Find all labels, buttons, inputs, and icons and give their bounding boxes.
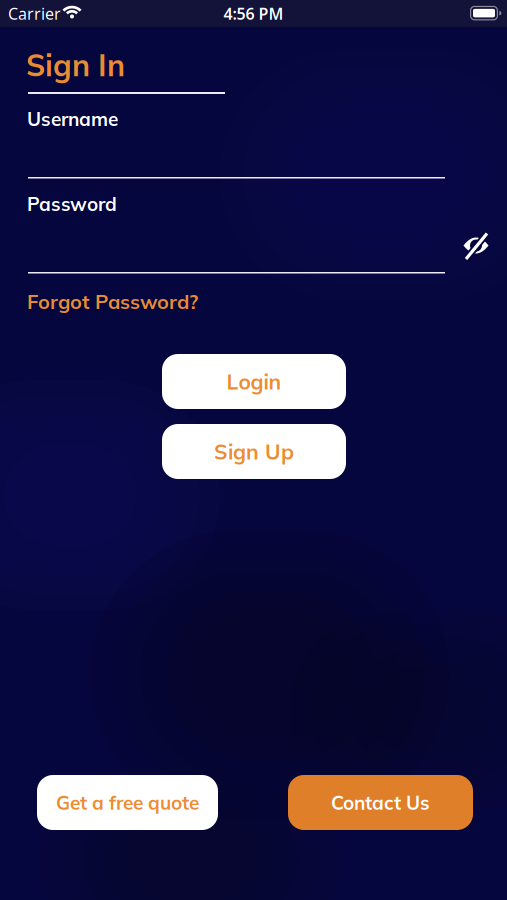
- button[interactable]: Get a free quote: [37, 775, 218, 830]
- staticText: 4:56 PM: [223, 3, 283, 24]
- staticText: Contact Us: [331, 791, 430, 814]
- button[interactable]: Forgot Password?: [27, 289, 198, 314]
- button[interactable]: Sign Up: [162, 424, 346, 479]
- button[interactable]: Contact Us: [288, 775, 473, 830]
- staticText: Username: [27, 107, 118, 131]
- staticText: Sign Up: [214, 438, 294, 465]
- button[interactable]: [463, 232, 489, 258]
- button[interactable]: Login: [162, 354, 346, 409]
- staticText: Password: [27, 192, 117, 216]
- staticText: Forgot Password?: [27, 289, 198, 314]
- staticText: Get a free quote: [56, 791, 199, 814]
- staticText: Carrier: [8, 3, 61, 24]
- staticText: Login: [226, 368, 281, 395]
- staticText: Sign In: [26, 46, 125, 84]
